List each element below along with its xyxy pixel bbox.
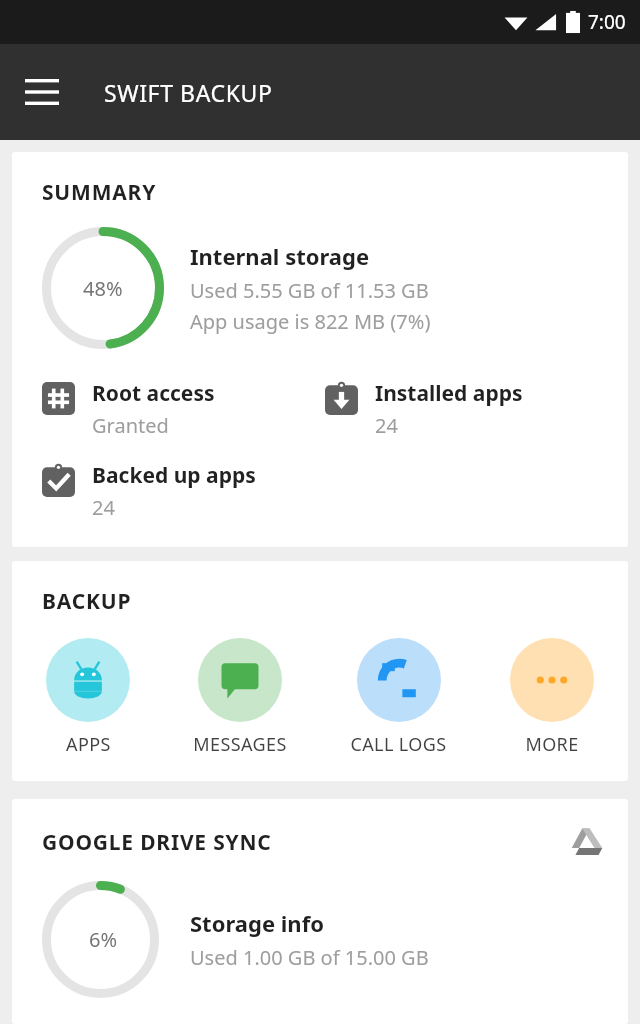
staticText: 24 — [92, 494, 115, 521]
button[interactable]: CALL LOGS — [346, 638, 451, 757]
staticText: 24 — [375, 412, 398, 439]
button[interactable]: APPS — [42, 638, 134, 757]
staticText: 6% — [89, 926, 118, 953]
staticText: CALL LOGS — [350, 732, 447, 757]
button[interactable]: Open navigation menu — [16, 66, 68, 118]
staticText: Used 5.55 GB of 11.53 GB — [190, 277, 429, 304]
button[interactable]: MORE — [506, 638, 598, 757]
staticText: Root access — [92, 379, 215, 408]
staticText: MESSAGES — [193, 732, 287, 757]
other: Google Drive — [570, 825, 604, 859]
staticText: Storage info — [190, 908, 324, 938]
staticText: MORE — [525, 732, 579, 757]
button[interactable]: Installed apps — [325, 379, 608, 439]
button[interactable]: Root access — [42, 379, 325, 439]
staticText: GOOGLE DRIVE SYNC — [42, 828, 272, 857]
staticText: 48% — [83, 275, 123, 302]
staticText: Granted — [92, 412, 169, 439]
staticText: Backed up apps — [92, 461, 256, 490]
staticText: App usage is 822 MB (7%) — [190, 308, 431, 335]
staticText: Used 1.00 GB of 15.00 GB — [190, 944, 429, 971]
staticText: Internal storage — [190, 241, 370, 271]
staticText: APPS — [66, 732, 111, 757]
staticText: SWIFT BACKUP — [104, 77, 273, 108]
staticText: BACKUP — [42, 587, 132, 616]
staticText: SUMMARY — [42, 178, 157, 207]
button[interactable]: Backed up apps — [42, 461, 325, 521]
staticText: 7:00 — [588, 9, 626, 35]
staticText: Installed apps — [375, 379, 523, 408]
button[interactable]: MESSAGES — [189, 638, 291, 757]
